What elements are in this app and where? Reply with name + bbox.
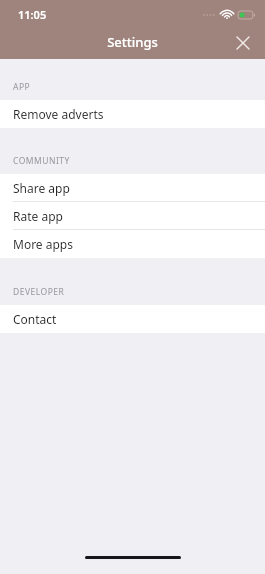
staticText: Settings bbox=[107, 33, 158, 51]
staticText: More apps bbox=[13, 236, 73, 252]
button[interactable]: Remove adverts bbox=[0, 100, 265, 128]
staticText: 11:05 bbox=[18, 7, 47, 22]
staticText: COMMUNITY bbox=[13, 155, 70, 167]
staticText: Remove adverts bbox=[13, 106, 104, 122]
button[interactable]: Share app bbox=[0, 174, 265, 202]
staticText: DEVELOPER bbox=[13, 286, 65, 298]
button[interactable]: More apps bbox=[0, 230, 265, 258]
button[interactable]: Close bbox=[229, 29, 257, 57]
button[interactable]: Contact bbox=[0, 305, 265, 333]
staticText: Rate app bbox=[13, 208, 63, 224]
staticText: APP bbox=[13, 81, 31, 93]
button[interactable]: Rate app bbox=[0, 202, 265, 230]
staticText: Share app bbox=[13, 180, 70, 196]
staticText: Contact bbox=[13, 311, 57, 327]
